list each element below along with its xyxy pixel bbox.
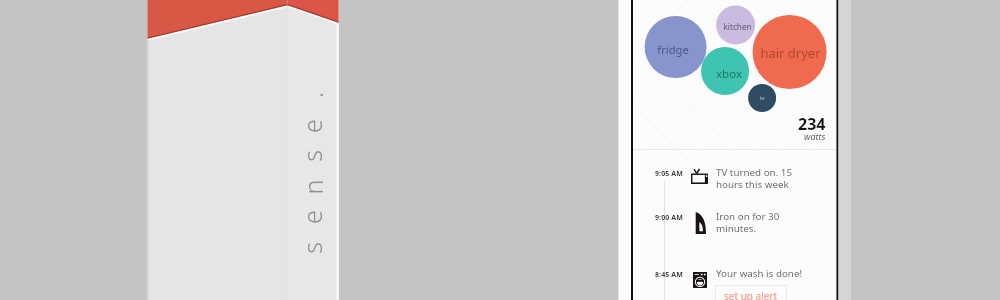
staticText: s [295, 242, 329, 254]
staticText: Your wash is done! [716, 267, 803, 280]
staticText: e [295, 210, 329, 224]
staticText: 234 [798, 113, 826, 135]
button[interactable]: set up alert [715, 285, 787, 300]
staticText: . [295, 91, 329, 98]
staticText: Iron on for 30 minutes. [716, 210, 780, 235]
staticText: hair dryer [760, 44, 821, 62]
staticText: 9:00 AM [655, 213, 683, 223]
staticText: watts [804, 130, 826, 142]
staticText: n [295, 179, 329, 194]
staticText: tv [759, 94, 765, 102]
button[interactable]: 9:05 AM [639, 161, 831, 201]
button[interactable]: 8:45 AM [639, 262, 831, 292]
staticText: kitchen [723, 21, 752, 32]
staticText: xbox [716, 66, 742, 82]
staticText: fridge [657, 42, 689, 57]
staticText: s [295, 150, 329, 162]
staticText: e [295, 119, 329, 133]
button[interactable]: 9:00 AM [639, 205, 831, 245]
staticText: 8:45 AM [655, 270, 683, 280]
staticText: set up alert [724, 289, 778, 300]
staticText: 9:05 AM [655, 169, 683, 179]
staticText: TV turned on. 15 hours this week [716, 166, 793, 191]
